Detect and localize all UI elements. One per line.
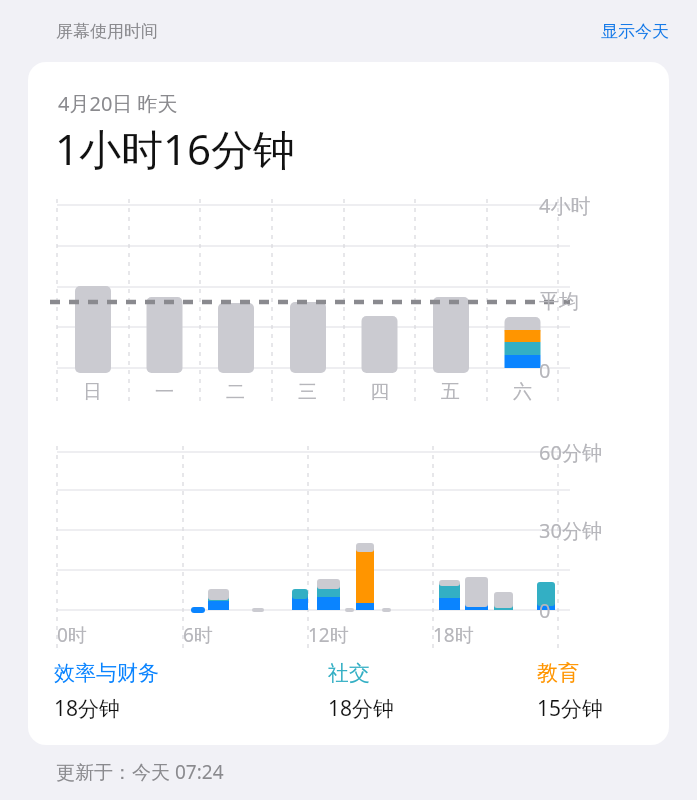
staticText: 二: [226, 380, 245, 404]
staticText: 4月20日 昨天: [58, 90, 178, 117]
staticText: 社交: [328, 660, 370, 686]
staticText: 6时: [183, 622, 213, 648]
staticText: 六: [513, 380, 532, 404]
staticText: 平均: [539, 289, 579, 314]
staticText: 0: [539, 597, 551, 624]
button[interactable]: 4月20日 昨天: [28, 62, 669, 745]
button[interactable]: 效率与财务: [50, 658, 163, 725]
staticText: 更新于：今天 07:24: [56, 759, 224, 785]
staticText: 1小时16分钟: [55, 120, 296, 177]
staticText: 60分钟: [539, 439, 602, 466]
staticText: 五: [441, 380, 460, 404]
staticText: 屏幕使用时间: [56, 21, 158, 42]
staticText: 效率与财务: [54, 660, 159, 686]
staticText: 18时: [433, 622, 474, 648]
staticText: 18分钟: [328, 694, 395, 723]
staticText: 教育: [537, 660, 579, 686]
staticText: 30分钟: [539, 517, 602, 544]
staticText: 4小时: [539, 192, 591, 219]
button[interactable]: 社交: [324, 658, 399, 725]
staticText: 日: [83, 380, 102, 404]
staticText: 0时: [57, 622, 87, 648]
staticText: 18分钟: [54, 694, 121, 723]
staticText: 四: [370, 380, 389, 404]
staticText: 三: [298, 380, 317, 404]
button[interactable]: 教育: [533, 658, 608, 725]
staticText: 0: [539, 357, 551, 384]
button[interactable]: 显示今天: [589, 13, 697, 50]
staticText: 一: [155, 380, 174, 404]
staticText: 显示今天: [601, 21, 669, 42]
staticText: 15分钟: [537, 694, 604, 723]
staticText: 12时: [308, 622, 349, 648]
